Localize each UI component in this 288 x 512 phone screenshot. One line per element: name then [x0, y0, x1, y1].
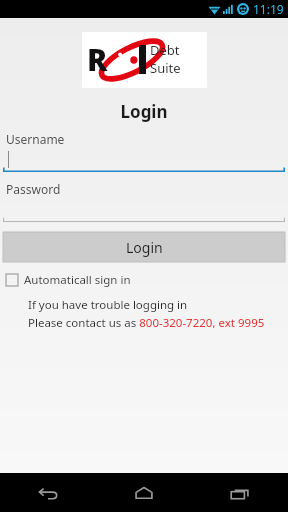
staticText: Login	[0, 100, 288, 123]
staticText: Debt	[150, 41, 180, 59]
staticText: Suite	[150, 59, 181, 77]
staticText: If you have trouble logging in	[28, 297, 188, 313]
button[interactable]	[0, 197, 288, 222]
staticText: 11:19	[253, 1, 284, 17]
staticText: Automaticall sign in	[24, 272, 131, 288]
staticText: Please contact us as 800-320-7220, ext 9…	[28, 315, 265, 331]
button[interactable]	[0, 147, 288, 172]
staticText: R	[87, 39, 108, 80]
staticText: Login	[126, 238, 163, 257]
staticText: Password	[6, 181, 61, 197]
button[interactable]: Home	[96, 473, 192, 512]
button[interactable]: Recents	[192, 473, 288, 512]
button[interactable]: Back	[0, 473, 96, 512]
staticText: Username	[6, 131, 65, 147]
button[interactable]: Automaticall sign in	[6, 272, 282, 288]
button[interactable]: Login	[3, 232, 285, 262]
